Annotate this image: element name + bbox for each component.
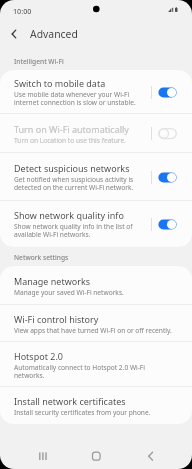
staticText: Use mobile data whenever your Wi-Fi inte… [14, 90, 136, 107]
button[interactable]: Back [132, 425, 182, 469]
button[interactable]: Turn on Wi-Fi automatically [0, 114, 192, 153]
staticText: Show network quality info in the list of… [14, 222, 133, 239]
staticText: Intelligent Wi-Fi [14, 57, 64, 66]
staticText: Turn on Location to use this feature. [14, 136, 126, 145]
staticText: Install network certificates [14, 395, 126, 407]
staticText: Install security certificates from your … [14, 408, 151, 417]
staticText: Advanced [30, 27, 78, 41]
staticText: Automatically connect to Hotspot 2.0 Wi-… [14, 363, 145, 380]
button[interactable]: Toggle [158, 218, 177, 231]
staticText: Detect suspicious networks [14, 162, 130, 174]
button[interactable]: Toggle [158, 171, 177, 184]
button[interactable]: Detect suspicious networks [0, 153, 192, 201]
button[interactable]: Navigate up [0, 21, 26, 47]
button[interactable]: Manage networks [0, 266, 192, 305]
staticText: Get notified when suspicious activity is… [14, 175, 134, 192]
staticText: Hotspot 2.0 [14, 350, 63, 362]
button[interactable]: Install network certificates [0, 387, 192, 424]
staticText: Switch to mobile data [14, 77, 106, 89]
staticText: Manage networks [14, 275, 91, 287]
button[interactable]: Recent apps [11, 425, 61, 469]
staticText: 10:00 [13, 6, 32, 16]
button[interactable]: Toggle [158, 86, 177, 99]
button[interactable]: Hotspot 2.0 [0, 342, 192, 387]
staticText: Show network quality info [14, 209, 124, 221]
button[interactable]: Home [71, 425, 121, 469]
staticText: Manage your saved Wi-Fi networks. [14, 288, 124, 297]
staticText: View apps that have turned Wi-Fi on or o… [14, 326, 172, 335]
staticText: Network settings [14, 253, 69, 262]
button[interactable]: Switch to mobile data [0, 70, 192, 114]
button[interactable]: Wi-Fi control history [0, 305, 192, 342]
button[interactable]: Show network quality info [0, 201, 192, 247]
staticText: Wi-Fi control history [14, 313, 99, 325]
button[interactable]: Toggle [158, 127, 177, 140]
staticText: Turn on Wi-Fi automatically [14, 123, 129, 135]
